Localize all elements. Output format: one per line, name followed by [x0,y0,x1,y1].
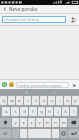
button[interactable]: j [54,107,61,116]
button[interactable]: . [52,129,59,138]
button[interactable]: Space [20,129,27,138]
button[interactable]: k [62,107,69,116]
staticText: m [62,120,66,126]
staticText: c [30,120,33,126]
button[interactable]: d [20,107,28,116]
button[interactable]: o [64,96,71,105]
staticText: f [32,109,34,115]
button[interactable]: a [2,107,10,116]
button[interactable]: Attach [1,81,8,88]
staticText: d [23,109,26,115]
button[interactable]: q [0,96,7,105]
button[interactable]: y [12,118,19,127]
staticText: q [2,98,5,104]
button[interactable]: t [32,96,39,105]
button[interactable]: e [16,96,23,105]
staticText: r [27,98,29,104]
button[interactable]: n [52,118,59,127]
staticText: a [5,109,8,115]
button[interactable]: s [11,107,19,116]
staticText: , [15,132,16,136]
button[interactable]: i [56,96,63,105]
staticText: Upišite tekstualnu poruku [18,83,62,88]
staticText: . [55,131,57,137]
button[interactable]: v [36,118,43,127]
button[interactable]: r [24,96,31,105]
staticText: i [59,98,61,104]
staticText: h [48,109,51,115]
staticText: s [14,109,17,115]
button[interactable]: Send [70,81,78,89]
staticText: !#1 [3,132,8,136]
staticText: e [18,98,21,104]
button[interactable]: h [46,107,53,116]
staticText: Unesite ime ili broj [4,17,40,22]
button[interactable]: u [48,96,55,105]
button[interactable]: c [28,118,35,127]
button[interactable]: l [70,107,77,116]
staticText: g [40,109,43,115]
button[interactable]: g [38,107,45,116]
button[interactable]: Unesite ime ili broj [2,16,66,23]
staticText: z [43,98,45,104]
staticText: y [14,120,17,126]
button[interactable]: Emoji [60,129,67,138]
button[interactable]: Enter [68,129,79,138]
staticText: x [22,120,25,126]
button[interactable]: b [44,118,51,127]
staticText: o [66,98,69,104]
button[interactable]: Backspace [68,118,79,127]
staticText: v [38,120,41,126]
staticText: p [74,98,77,104]
button[interactable]: !#1 [0,129,11,138]
staticText: Nova poruka [9,6,38,12]
button[interactable]: Emoji [8,81,15,88]
button[interactable]: , [12,129,19,138]
button[interactable]: Hide keyboard [50,89,56,95]
button[interactable]: Keyboard settings [23,89,29,95]
staticText: u [50,98,53,104]
button[interactable]: f [29,107,37,116]
staticText: n [54,120,57,126]
staticText: k [64,109,67,115]
button[interactable]: Add contact [68,15,77,24]
staticText: l [73,109,75,115]
button[interactable]: p [72,96,79,105]
staticText: t [35,98,37,104]
button[interactable]: Upišite tekstualnu poruku [16,82,69,88]
button[interactable]: z [40,96,47,105]
button[interactable]: m [60,118,67,127]
staticText: j [57,109,59,115]
staticText: w [10,98,14,104]
button[interactable]: w [8,96,15,105]
button[interactable]: Shift [0,118,11,127]
staticText: b [46,120,49,126]
button[interactable]: x [20,118,27,127]
button[interactable]: Back [0,5,9,13]
